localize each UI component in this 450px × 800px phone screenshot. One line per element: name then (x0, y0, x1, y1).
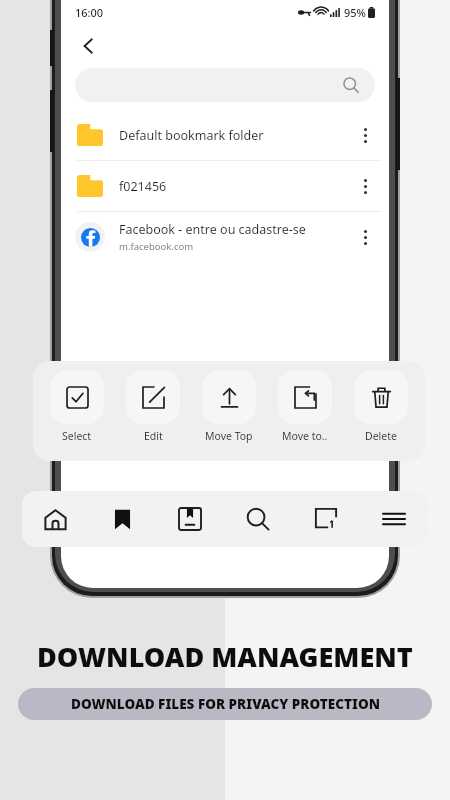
button[interactable]: Menu (360, 491, 428, 547)
button[interactable]: Tabs (292, 491, 360, 547)
button[interactable]: Search (224, 491, 292, 547)
staticText: DOWNLOAD MANAGEMENT (37, 638, 413, 675)
button[interactable]: Home (22, 491, 89, 547)
button[interactable]: Delete (343, 370, 419, 452)
button[interactable]: f021456 (61, 161, 389, 211)
staticText: 16:00 (75, 5, 104, 20)
button[interactable]: Select (39, 370, 115, 452)
button[interactable]: Move to.. (267, 370, 343, 452)
staticText: Move to.. (282, 429, 328, 443)
button[interactable]: Edit (115, 370, 191, 452)
button[interactable]: Bookmarks (89, 491, 156, 547)
button[interactable]: Reading list (156, 491, 224, 547)
staticText: m.facebook.com (119, 240, 194, 253)
staticText: DOWNLOAD FILES FOR PRIVACY PROTECTION (71, 695, 380, 713)
staticText: Move Top (205, 429, 253, 443)
button[interactable]: Facebook - entre ou cadastre-se (61, 212, 389, 262)
button[interactable]: More options (347, 168, 383, 204)
button[interactable]: Back (67, 24, 111, 68)
staticText: Facebook - entre ou cadastre-se (119, 221, 306, 238)
staticText: Select (62, 429, 92, 443)
button[interactable]: More options (347, 219, 383, 255)
button[interactable]: DOWNLOAD FILES FOR PRIVACY PROTECTION (18, 688, 432, 720)
staticText: 95% (344, 5, 366, 20)
staticText: f021456 (119, 178, 167, 195)
staticText: Delete (365, 429, 397, 443)
button[interactable]: Default bookmark folder (61, 110, 389, 160)
staticText: Default bookmark folder (119, 127, 264, 144)
button[interactable]: More options (347, 117, 383, 153)
button[interactable]: Move Top (191, 370, 267, 452)
staticText: Edit (144, 429, 163, 443)
button[interactable]: Search (75, 68, 375, 102)
